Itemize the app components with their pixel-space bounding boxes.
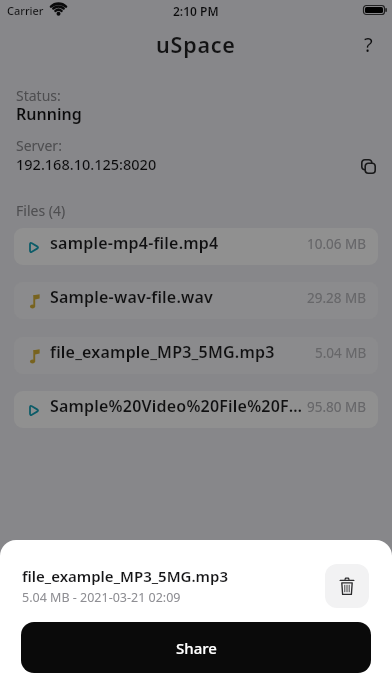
staticText: Carrier	[7, 3, 44, 18]
staticText: 29.28 MB	[307, 289, 367, 307]
staticText: 95.80 MB	[307, 398, 367, 416]
staticText: Share	[176, 638, 217, 658]
button[interactable]	[325, 564, 369, 608]
button[interactable]: Share	[21, 622, 371, 673]
staticText: Server:	[16, 136, 62, 155]
staticText: Running	[16, 103, 82, 125]
staticText: Status:	[16, 86, 61, 105]
button[interactable]: Sample-wav-file.wav	[14, 282, 378, 319]
button[interactable]	[352, 150, 384, 182]
staticText: file_example_MP3_5MG.mp3	[50, 341, 313, 363]
staticText: uSpace	[156, 30, 236, 59]
staticText: 5.04 MB	[315, 344, 367, 362]
staticText: 192.168.10.125:8020	[16, 154, 157, 174]
staticText: 10.06 MB	[307, 235, 367, 253]
button[interactable]: file_example_MP3_5MG.mp3	[14, 337, 378, 374]
staticText: sample-mp4-file.mp4	[50, 232, 305, 254]
staticText: Sample-wav-file.wav	[50, 286, 305, 308]
button[interactable]: Sample%20Video%20File%20For%20Testing.mp…	[14, 391, 378, 428]
button[interactable]: ?	[352, 28, 384, 60]
staticText: Files (4)	[16, 201, 66, 220]
staticText: ?	[364, 31, 373, 58]
staticText: Sample%20Video%20File%20For%20Testing.mp…	[50, 395, 305, 417]
staticText: 5.04 MB - 2021-03-21 02:09	[22, 589, 181, 606]
staticText: 2:10 PM	[173, 3, 219, 19]
staticText: file_example_MP3_5MG.mp3	[22, 566, 228, 586]
button[interactable]: sample-mp4-file.mp4	[14, 228, 378, 265]
